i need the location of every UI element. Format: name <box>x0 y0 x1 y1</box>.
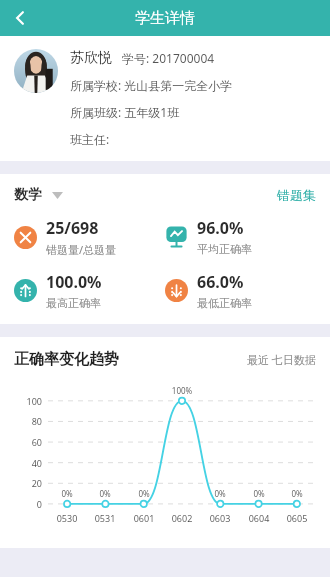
staticText: 100% <box>166 385 198 396</box>
button[interactable]: 25/698 <box>14 217 165 257</box>
staticText: 20 <box>0 477 42 489</box>
staticText: 0% <box>243 488 275 499</box>
staticText: 100.0% <box>46 271 102 293</box>
staticText: 0604 <box>239 512 279 524</box>
staticText: 100 <box>0 395 42 407</box>
staticText: 0% <box>281 488 313 499</box>
staticText: 66.0% <box>197 271 244 293</box>
staticText: 0531 <box>85 512 125 524</box>
staticText: 数学 <box>14 186 42 204</box>
staticText: 0 <box>0 498 42 510</box>
button[interactable]: 数学 <box>14 186 63 204</box>
staticText: 错题集 <box>277 187 316 203</box>
staticText: 0% <box>204 488 236 499</box>
staticText: 正确率变化趋势 <box>14 350 119 369</box>
staticText: 60 <box>0 436 42 448</box>
staticText: 苏欣悦 <box>70 49 112 67</box>
staticText: 0% <box>51 488 83 499</box>
staticText: 0602 <box>162 512 202 524</box>
button[interactable]: Back <box>0 0 40 36</box>
staticText: 班主任: <box>70 131 110 147</box>
staticText: 0605 <box>277 512 317 524</box>
staticText: 最高正确率 <box>46 296 101 310</box>
staticText: 40 <box>0 457 42 469</box>
staticText: 0% <box>128 488 160 499</box>
staticText: 25/698 <box>46 217 99 239</box>
staticText: 所属班级: 五年级1班 <box>70 104 180 120</box>
staticText: 平均正确率 <box>197 242 252 256</box>
staticText: 错题量/总题量 <box>46 242 117 257</box>
button[interactable]: 66.0% <box>165 271 316 310</box>
staticText: 所属学校: 光山县第一完全小学 <box>70 77 233 93</box>
staticText: 0% <box>89 488 121 499</box>
staticText: 最近 七日数据 <box>247 352 316 367</box>
staticText: 96.0% <box>197 217 244 239</box>
staticText: 0530 <box>47 512 87 524</box>
staticText: 0601 <box>124 512 164 524</box>
staticText: 学号: 201700004 <box>122 50 215 66</box>
button[interactable]: 96.0% <box>165 217 316 256</box>
button[interactable]: 最近 七日数据 <box>247 352 316 367</box>
button[interactable]: 错题集 <box>277 187 316 203</box>
button[interactable]: 100.0% <box>14 271 165 310</box>
staticText: 0603 <box>200 512 240 524</box>
staticText: 最低正确率 <box>197 296 252 310</box>
staticText: 学生详情 <box>135 9 195 28</box>
staticText: 80 <box>0 415 42 427</box>
